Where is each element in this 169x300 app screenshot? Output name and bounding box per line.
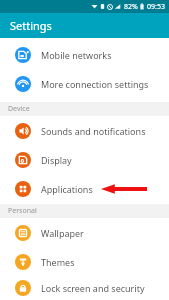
staticText: Wallpaper	[41, 227, 84, 239]
staticText: Mobile networks	[41, 49, 112, 61]
staticText: 82%	[124, 2, 138, 12]
button[interactable]: Display	[0, 145, 169, 174]
staticText: Themes	[41, 256, 75, 268]
staticText: Display	[41, 154, 72, 166]
staticText: Personal	[8, 206, 37, 216]
button[interactable]: Sounds and notifications	[0, 116, 169, 145]
button[interactable]: More connection settings	[0, 69, 169, 98]
staticText: Device	[8, 104, 30, 114]
staticText: Settings	[10, 18, 52, 33]
button[interactable]: Themes	[0, 247, 169, 276]
button[interactable]: Applications	[0, 174, 169, 203]
button[interactable]: Mobile networks	[0, 40, 169, 69]
staticText: Sounds and notifications	[41, 125, 146, 137]
staticText: More connection settings	[41, 78, 149, 90]
staticText: Applications	[41, 183, 93, 195]
staticText: 09:53	[147, 2, 165, 12]
button[interactable]: Lock screen and security	[0, 276, 169, 300]
staticText: Lock screen and security	[41, 282, 145, 294]
button[interactable]: Wallpaper	[0, 218, 169, 247]
